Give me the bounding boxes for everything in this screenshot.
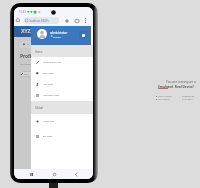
staticText: Emulated bbox=[158, 85, 174, 89]
staticText: Home bbox=[35, 50, 43, 54]
staticText: What's New bbox=[43, 120, 55, 123]
button[interactable]: User Index bbox=[31, 79, 93, 90]
staticText: Real Device! bbox=[174, 85, 194, 89]
staticText: administrator bbox=[50, 31, 68, 35]
staticText: 10:43 bbox=[19, 10, 26, 14]
button[interactable]: Administrator Infos bbox=[31, 57, 93, 68]
button[interactable]: Recents bbox=[26, 169, 37, 179]
staticText: Application Index bbox=[43, 94, 60, 97]
staticText: Profile bbox=[20, 53, 36, 60]
staticText: Page Index bbox=[43, 72, 54, 75]
button[interactable]: Collapse bbox=[79, 31, 87, 39]
staticText: EFA Index bbox=[43, 135, 53, 138]
staticText: User Index bbox=[43, 83, 54, 86]
button[interactable]: Test Session bbox=[156, 98, 196, 101]
staticText: Global bbox=[35, 106, 43, 110]
button[interactable]: More options bbox=[82, 17, 89, 24]
button[interactable]: Page Index bbox=[31, 68, 93, 79]
button[interactable]: Home bbox=[15, 16, 21, 23]
button[interactable]: Home bbox=[49, 169, 60, 179]
staticText: Administrator Infos bbox=[43, 61, 62, 64]
button[interactable]: New tab bbox=[63, 17, 70, 24]
button[interactable]: What's New bbox=[31, 114, 93, 129]
staticText: Edit bbox=[24, 73, 29, 76]
button[interactable]: EFA Index bbox=[31, 129, 93, 143]
button[interactable]: Serial Number bbox=[156, 95, 196, 98]
staticText: Serial Number bbox=[158, 95, 173, 98]
staticText: localhost:3000/v bbox=[29, 19, 49, 23]
button[interactable]: Application Index bbox=[31, 90, 93, 101]
staticText: You are testing on a bbox=[166, 80, 196, 84]
staticText: XYZ bbox=[21, 27, 31, 34]
button[interactable]: Back bbox=[70, 169, 81, 179]
staticText: Logout bbox=[53, 35, 61, 38]
staticText: Test Session bbox=[158, 98, 170, 101]
button[interactable]: Edit bbox=[20, 71, 33, 77]
staticText: Last modified 12.04 bbox=[20, 62, 42, 65]
staticText: 27.04.2024 bbox=[182, 98, 193, 101]
staticText: SN83920194 bbox=[182, 95, 195, 98]
button[interactable]: Tabs bbox=[73, 17, 80, 24]
button[interactable]: localhost:3000/v bbox=[24, 17, 59, 24]
button[interactable]: Account bbox=[37, 29, 47, 39]
